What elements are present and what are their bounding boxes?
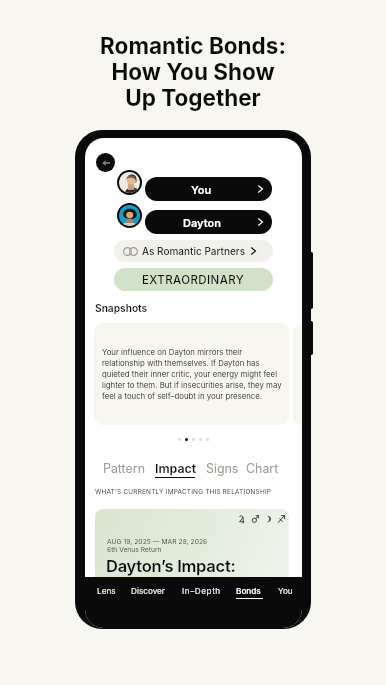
button[interactable]: Bonds [236, 586, 263, 599]
button[interactable]: Chart [246, 461, 279, 476]
button[interactable]: Dayton [145, 210, 272, 234]
staticText: Snapshots [95, 302, 148, 314]
button[interactable]: AUG 19, 2025 — MAR 28, 2026 [95, 509, 289, 589]
button[interactable]: In–Depth [182, 586, 221, 596]
staticText: You [278, 586, 293, 596]
button[interactable]: You [145, 177, 272, 201]
staticText: In–Depth [182, 586, 221, 596]
staticText: EXTRAORDINARY [142, 273, 245, 287]
staticText: 6th Venus Return [107, 546, 162, 554]
staticText: Dayton [183, 216, 221, 229]
button[interactable]: Signs [206, 461, 239, 476]
button[interactable]: Profile photo of Dayton [117, 203, 142, 228]
staticText: As Romantic Partners [142, 245, 246, 257]
staticText: Bonds [236, 586, 261, 596]
staticText: AUG 19, 2025 — MAR 28, 2026 [107, 538, 208, 546]
button[interactable]: Impact [155, 461, 197, 478]
button[interactable]: Your influence on Dayton mirrors their r… [94, 323, 289, 425]
staticText: Your influence on Dayton mirrors their r… [102, 347, 283, 401]
button[interactable]: Pattern [103, 461, 145, 476]
staticText: Discover [131, 586, 165, 596]
button[interactable]: Lens [97, 586, 116, 596]
staticText: Dayton’s Impact: [106, 556, 236, 576]
button[interactable]: As Romantic Partners [114, 240, 273, 262]
button[interactable]: EXTRAORDINARY [114, 268, 273, 291]
button[interactable]: You [278, 586, 293, 596]
button[interactable]: Back [96, 153, 115, 172]
staticText: Lens [97, 586, 116, 596]
button[interactable]: Profile photo of You [117, 170, 142, 195]
staticText: Romantic Bonds: How You Show Up Together [100, 32, 286, 111]
staticText: Impact [155, 461, 197, 476]
staticText: WHAT'S CURRENTLY IMPACTING THIS RELATION… [95, 488, 272, 496]
button[interactable]: Discover [131, 586, 165, 596]
staticText: Signs [206, 461, 239, 476]
staticText: You [191, 183, 212, 196]
staticText: Pattern [103, 461, 145, 476]
staticText: Chart [246, 461, 279, 476]
